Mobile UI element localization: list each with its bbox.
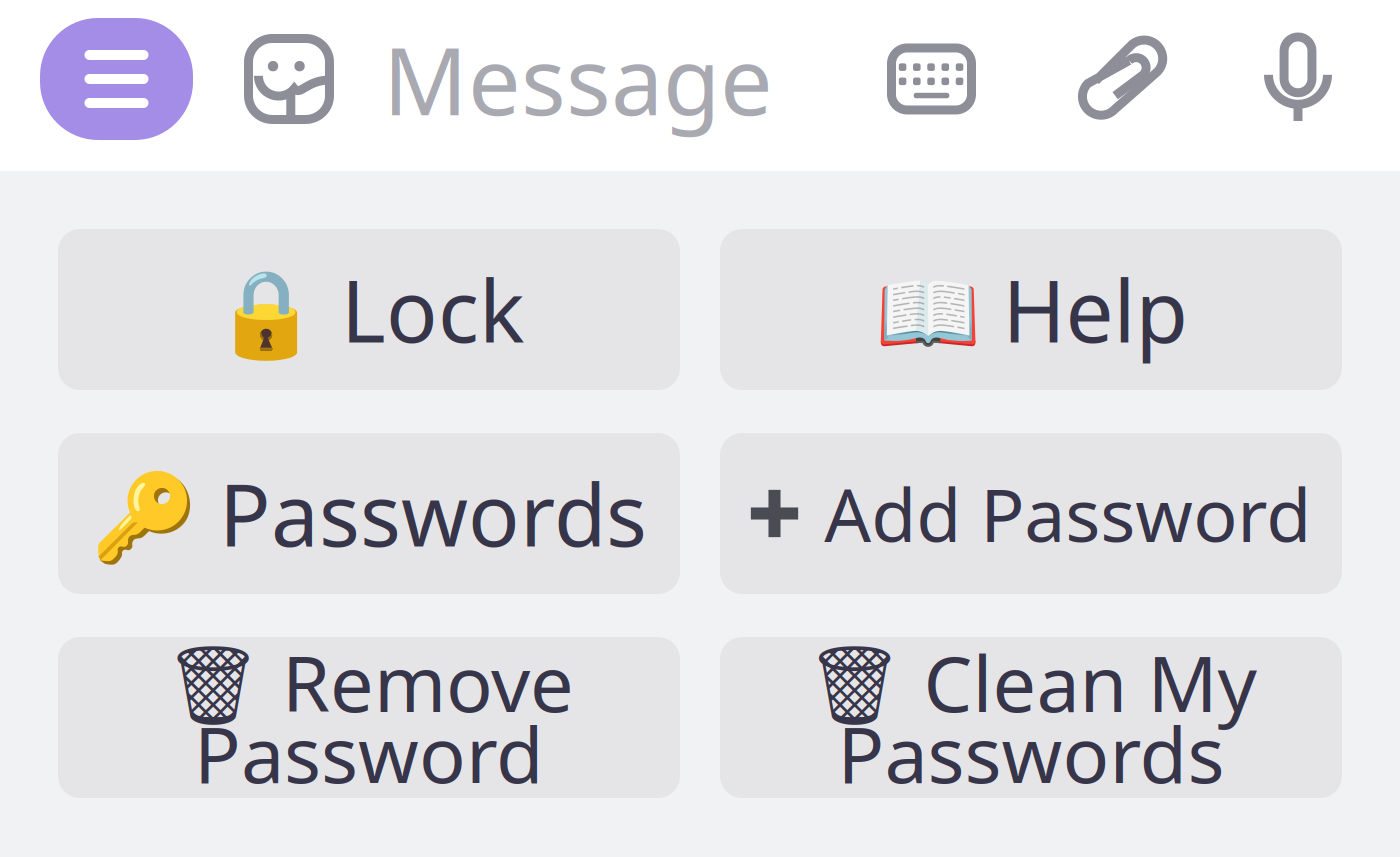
button[interactable]: Attach [1087, 18, 1165, 140]
button[interactable]: 🔑 Passwords [58, 433, 680, 594]
button[interactable]: 🗑 Clean My [720, 637, 1342, 798]
staticText: Message [383, 17, 773, 141]
staticText: 🗑 Clean My [805, 631, 1256, 733]
button[interactable]: Menu [40, 18, 193, 140]
button[interactable]: Keyboard [887, 18, 976, 140]
button[interactable]: Stickers [244, 18, 334, 140]
staticText: 🔑 Passwords [91, 457, 647, 570]
button[interactable]: 📖 Help [720, 229, 1342, 390]
staticText: Passwords [837, 702, 1224, 804]
staticText: 🔒 Lock [213, 253, 525, 366]
staticText: 📖 Help [874, 253, 1187, 366]
button[interactable]: Add Password [720, 433, 1342, 594]
button[interactable]: 🔒 Lock [58, 229, 680, 390]
staticText: Add Password [824, 465, 1311, 562]
button[interactable]: 🗑 Remove [58, 637, 680, 798]
staticText: Password [194, 702, 544, 804]
button[interactable]: Record audio [1264, 18, 1332, 140]
staticText: 🗑 Remove [164, 631, 574, 733]
